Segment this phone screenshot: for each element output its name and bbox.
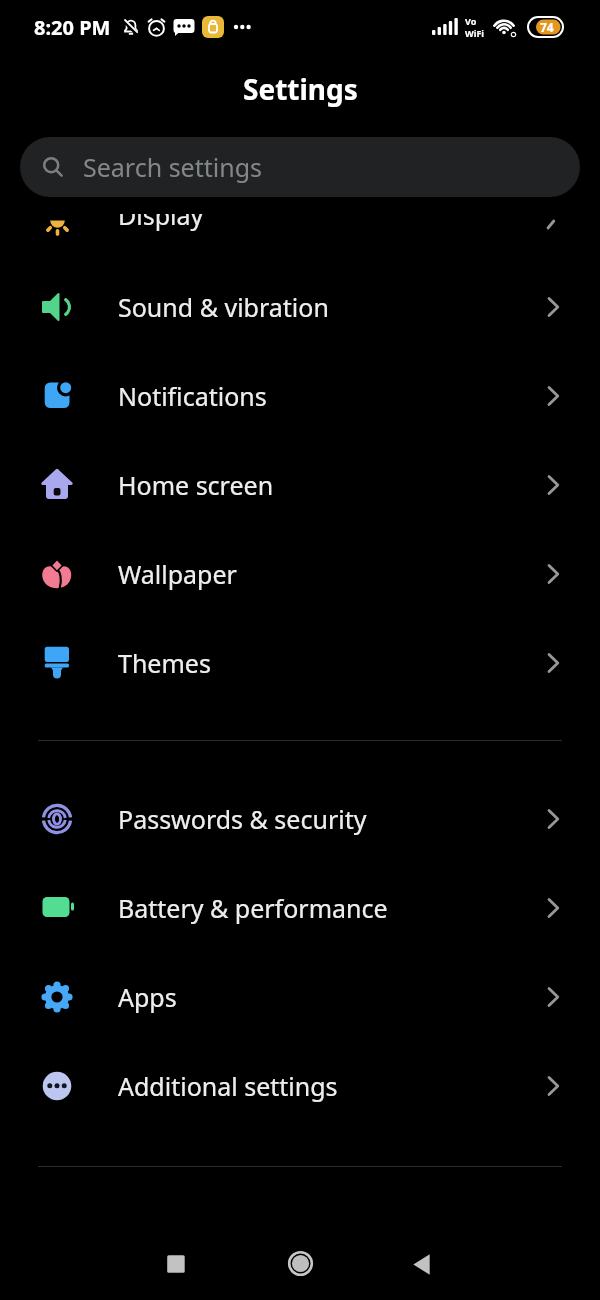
button[interactable]: Notifications	[0, 351, 600, 440]
staticText: 74	[540, 19, 554, 35]
staticText: Passwords & security	[118, 802, 367, 836]
staticText: WiFi	[465, 27, 485, 39]
button[interactable]: Home screen	[0, 440, 600, 529]
button[interactable]: Apps	[0, 952, 600, 1041]
button[interactable]	[287, 1250, 314, 1277]
button[interactable]: Wallpaper	[0, 529, 600, 618]
button[interactable]: Additional settings	[0, 1041, 600, 1130]
button[interactable]: Search settings	[20, 137, 580, 197]
staticText: Settings	[243, 70, 358, 108]
staticText: Search settings	[83, 150, 263, 184]
staticText: Vo	[465, 15, 477, 27]
button[interactable]: Themes	[0, 618, 600, 707]
button[interactable]	[163, 1251, 189, 1277]
button[interactable]: Battery & performance	[0, 863, 600, 952]
staticText: Display	[118, 214, 204, 232]
staticText: Sound & vibration	[118, 290, 329, 324]
staticText: Notifications	[118, 379, 267, 413]
button[interactable]	[409, 1252, 434, 1277]
staticText: 8:20 PM	[34, 14, 111, 41]
staticText: Wallpaper	[118, 557, 237, 591]
staticText: Battery & performance	[118, 891, 388, 925]
staticText: Home screen	[118, 468, 274, 502]
button[interactable]: Sound & vibration	[0, 262, 600, 351]
staticText: Themes	[118, 646, 211, 680]
staticText: Additional settings	[118, 1069, 338, 1103]
button[interactable]: Display	[0, 214, 600, 262]
staticText: Apps	[118, 980, 177, 1014]
button[interactable]: Passwords & security	[0, 774, 600, 863]
